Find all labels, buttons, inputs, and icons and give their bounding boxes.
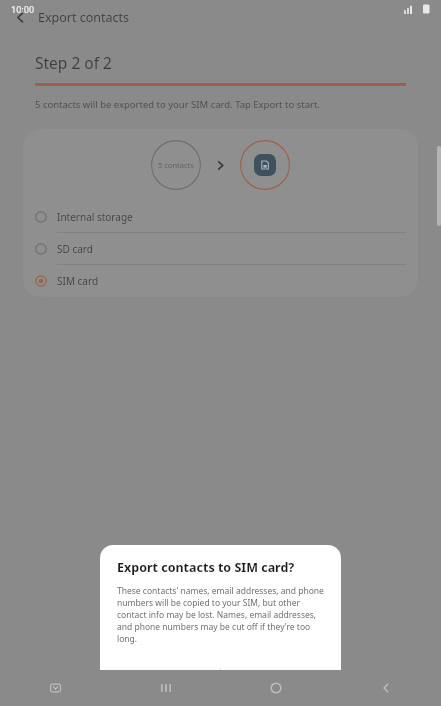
- staticText: 10:00: [11, 3, 35, 15]
- staticText: Step 2 of 2: [35, 52, 112, 73]
- staticText: Cancel: [144, 667, 176, 681]
- button[interactable]: SD card: [23, 233, 418, 265]
- staticText: Internal storage: [57, 210, 133, 224]
- staticText: These contacts' names, email addresses, …: [117, 585, 324, 645]
- button[interactable]: OK: [221, 659, 341, 689]
- staticText: OK: [274, 667, 289, 681]
- button[interactable]: Home: [221, 670, 331, 706]
- staticText: 5 contacts: [158, 160, 194, 170]
- button[interactable]: Cancel: [100, 659, 220, 689]
- button[interactable]: Internal storage: [23, 201, 418, 233]
- button[interactable]: Navigate up: [6, 3, 34, 31]
- staticText: SD card: [57, 242, 93, 256]
- staticText: Export contacts to SIM card?: [117, 559, 295, 576]
- button[interactable]: Hide keyboard: [0, 670, 111, 706]
- staticText: 5 contacts will be exported to your SIM …: [35, 98, 320, 111]
- staticText: Export contacts: [38, 9, 130, 26]
- button[interactable]: Recent apps: [111, 670, 221, 706]
- staticText: SIM card: [57, 274, 99, 288]
- button[interactable]: SIM card: [23, 265, 418, 297]
